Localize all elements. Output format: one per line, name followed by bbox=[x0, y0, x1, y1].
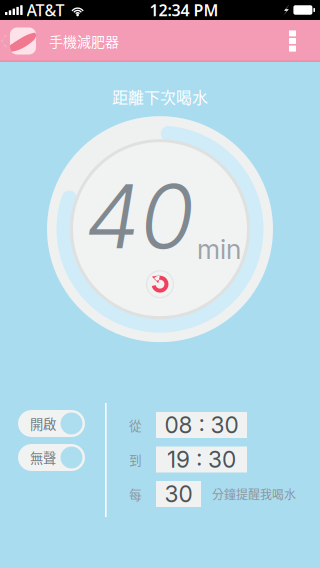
button[interactable]: Reset timer bbox=[142, 266, 178, 302]
button[interactable]: 08 : 30 bbox=[156, 412, 247, 438]
button[interactable]: 19 : 30 bbox=[156, 446, 247, 472]
staticText: min bbox=[197, 233, 241, 265]
staticText: 從 bbox=[129, 416, 142, 434]
staticText: 分鐘提醒我喝水 bbox=[212, 485, 296, 503]
staticText: 40 bbox=[85, 163, 194, 269]
staticText: 無聲 bbox=[30, 448, 56, 467]
button[interactable]: 開啟 bbox=[18, 410, 85, 437]
button[interactable]: More options bbox=[277, 20, 320, 62]
staticText: 每 bbox=[129, 485, 142, 503]
staticText: AT&T bbox=[27, 0, 65, 21]
staticText: 30 bbox=[164, 480, 192, 508]
staticText: 手機減肥器 bbox=[49, 31, 119, 51]
button[interactable]: 無聲 bbox=[18, 444, 85, 471]
staticText: 開啟 bbox=[30, 414, 56, 433]
staticText: 到 bbox=[129, 450, 142, 469]
button[interactable]: 30 bbox=[156, 481, 201, 507]
staticText: 12:34 PM bbox=[149, 0, 218, 21]
button[interactable]: Back bbox=[0, 20, 10, 62]
staticText: 距離下次喝水 bbox=[112, 85, 208, 108]
staticText: 19 : 30 bbox=[167, 446, 236, 473]
staticText: 08 : 30 bbox=[164, 411, 238, 439]
